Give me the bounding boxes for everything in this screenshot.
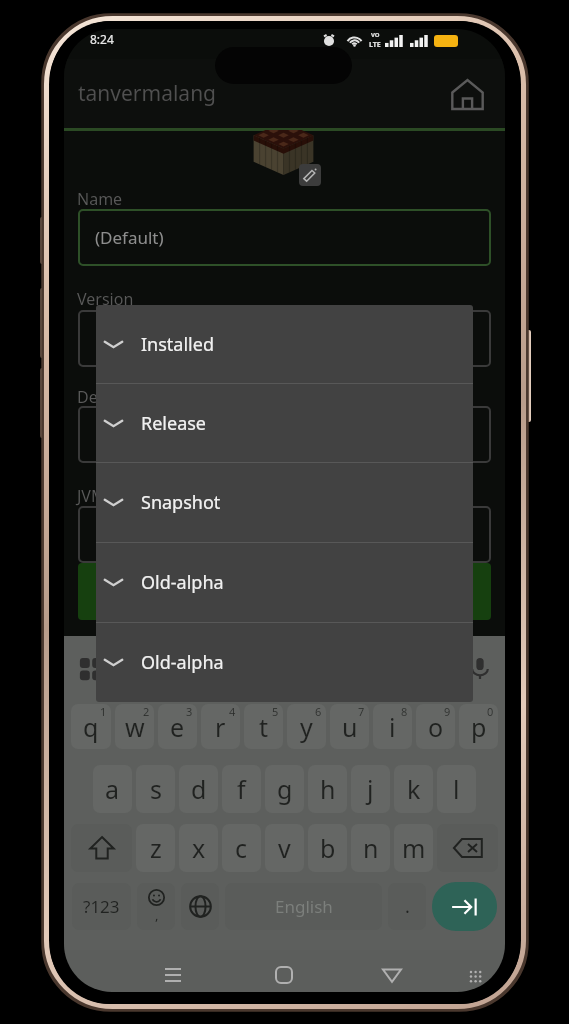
button[interactable]: (Default) — [78, 209, 491, 266]
staticText: English — [275, 895, 333, 918]
button[interactable]: Space — [225, 883, 382, 930]
staticText: x — [192, 831, 206, 865]
button[interactable]: Back — [370, 959, 414, 991]
button[interactable]: Voice input — [467, 655, 493, 681]
button[interactable]: Old-alpha — [96, 623, 473, 702]
staticText: (Default) — [95, 226, 164, 249]
staticText: l — [453, 772, 460, 806]
staticText: y — [300, 710, 313, 744]
staticText: 0 — [487, 704, 494, 719]
button[interactable]: Home — [262, 959, 306, 991]
staticText: 8 — [401, 704, 408, 719]
staticText: 2 — [143, 704, 150, 719]
button[interactable]: c — [222, 824, 261, 872]
staticText: d — [191, 772, 207, 806]
button[interactable]: Emoji — [137, 883, 175, 930]
staticText: Name — [77, 188, 123, 210]
staticText: v — [278, 831, 291, 865]
staticText: e — [170, 710, 185, 744]
button[interactable]: Language — [181, 883, 219, 930]
staticText: ?123 — [83, 895, 120, 918]
staticText: p — [471, 710, 487, 744]
button[interactable]: Backspace — [437, 824, 498, 872]
button[interactable]: Home — [445, 72, 489, 116]
staticText: Version — [77, 288, 134, 310]
staticText: b — [320, 831, 336, 865]
button[interactable]: LAUNCH — [78, 563, 491, 620]
staticText: Old-alpha — [141, 650, 224, 675]
staticText: h — [320, 772, 336, 806]
button[interactable]: Edit icon — [299, 164, 321, 186]
button[interactable]: Installed — [96, 305, 473, 383]
staticText: 6 — [315, 704, 322, 719]
button[interactable]: Enter — [432, 882, 497, 931]
staticText: g — [277, 772, 293, 806]
button[interactable]: Shift — [71, 824, 132, 872]
button[interactable]: r — [201, 704, 240, 749]
button[interactable]: a — [93, 765, 132, 813]
button[interactable]: Recents — [151, 959, 195, 991]
staticText: 3 — [186, 704, 193, 719]
staticText: 5 — [272, 704, 279, 719]
button[interactable]: g — [265, 765, 304, 813]
button[interactable]: z — [136, 824, 175, 872]
staticText: i — [389, 710, 396, 744]
button[interactable]: e — [158, 704, 197, 749]
staticText: VO — [371, 31, 380, 39]
button[interactable]: Release — [96, 384, 473, 462]
staticText: 7 — [358, 704, 365, 719]
staticText: t — [259, 710, 269, 744]
staticText: 1 — [100, 704, 107, 719]
button[interactable]: f — [222, 765, 261, 813]
button[interactable]: Keyboard switcher — [454, 961, 494, 989]
staticText: z — [150, 831, 162, 865]
button[interactable]: i — [373, 704, 412, 749]
button[interactable]: w — [115, 704, 154, 749]
button[interactable]: u — [330, 704, 369, 749]
button[interactable]: m — [394, 824, 433, 872]
button[interactable]: k — [394, 765, 433, 813]
button[interactable]: Snapshot — [96, 463, 473, 542]
button[interactable]: Symbols — [72, 883, 131, 930]
button[interactable]: d — [179, 765, 218, 813]
staticText: q — [83, 710, 99, 744]
button[interactable]: y — [287, 704, 326, 749]
staticText: k — [407, 772, 421, 806]
staticText: LTE — [369, 40, 381, 50]
button[interactable]: o — [416, 704, 455, 749]
staticText: Device — [77, 386, 127, 408]
button[interactable]: l — [437, 765, 476, 813]
staticText: tanvermalang — [78, 79, 217, 108]
button[interactable]: j — [351, 765, 390, 813]
button[interactable] — [78, 310, 491, 367]
staticText: r — [215, 710, 226, 744]
staticText: . — [405, 894, 410, 919]
button[interactable]: v — [265, 824, 304, 872]
staticText: JVM — [77, 485, 106, 507]
button[interactable]: p — [459, 704, 498, 749]
button[interactable]: x — [179, 824, 218, 872]
staticText: w — [125, 710, 145, 744]
button[interactable]: s — [136, 765, 175, 813]
staticText: a — [105, 772, 120, 806]
button[interactable] — [78, 506, 491, 563]
staticText: u — [342, 710, 358, 744]
staticText: c — [235, 831, 248, 865]
button[interactable]: b — [308, 824, 347, 872]
button[interactable] — [78, 406, 491, 463]
button[interactable]: h — [308, 765, 347, 813]
button[interactable]: t — [244, 704, 283, 749]
staticText: 4 — [229, 704, 236, 719]
button[interactable]: n — [351, 824, 390, 872]
staticText: Old-alpha — [141, 570, 224, 595]
staticText: s — [150, 772, 162, 806]
staticText: Release — [141, 411, 207, 436]
button[interactable]: q — [71, 704, 111, 749]
staticText: 8:24 — [90, 31, 114, 47]
button[interactable]: Old-alpha — [96, 543, 473, 622]
staticText: 9 — [444, 704, 451, 719]
staticText: , — [155, 906, 159, 924]
button[interactable]: Toolbar — [76, 653, 106, 683]
